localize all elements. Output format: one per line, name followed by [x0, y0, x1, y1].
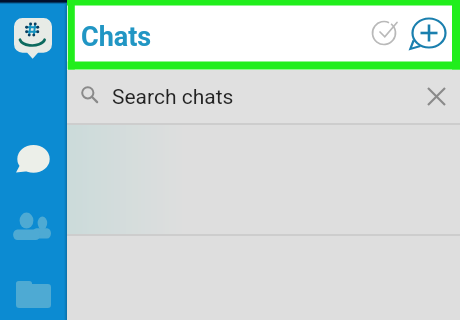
button[interactable]: Search — [67, 70, 460, 123]
staticText: Chats — [81, 21, 152, 53]
button[interactable]: Files — [16, 281, 51, 308]
button[interactable]: Select chats — [369, 18, 399, 48]
button[interactable] — [67, 125, 460, 234]
button[interactable]: Search — [81, 86, 98, 103]
button[interactable]: Chats — [16, 145, 50, 173]
button[interactable]: Clear — [428, 88, 445, 105]
button[interactable]: GroupMe — [14, 18, 52, 59]
button[interactable]: Contacts — [13, 212, 51, 240]
button[interactable]: New chat — [410, 15, 448, 51]
staticText: Search chats — [112, 85, 234, 110]
